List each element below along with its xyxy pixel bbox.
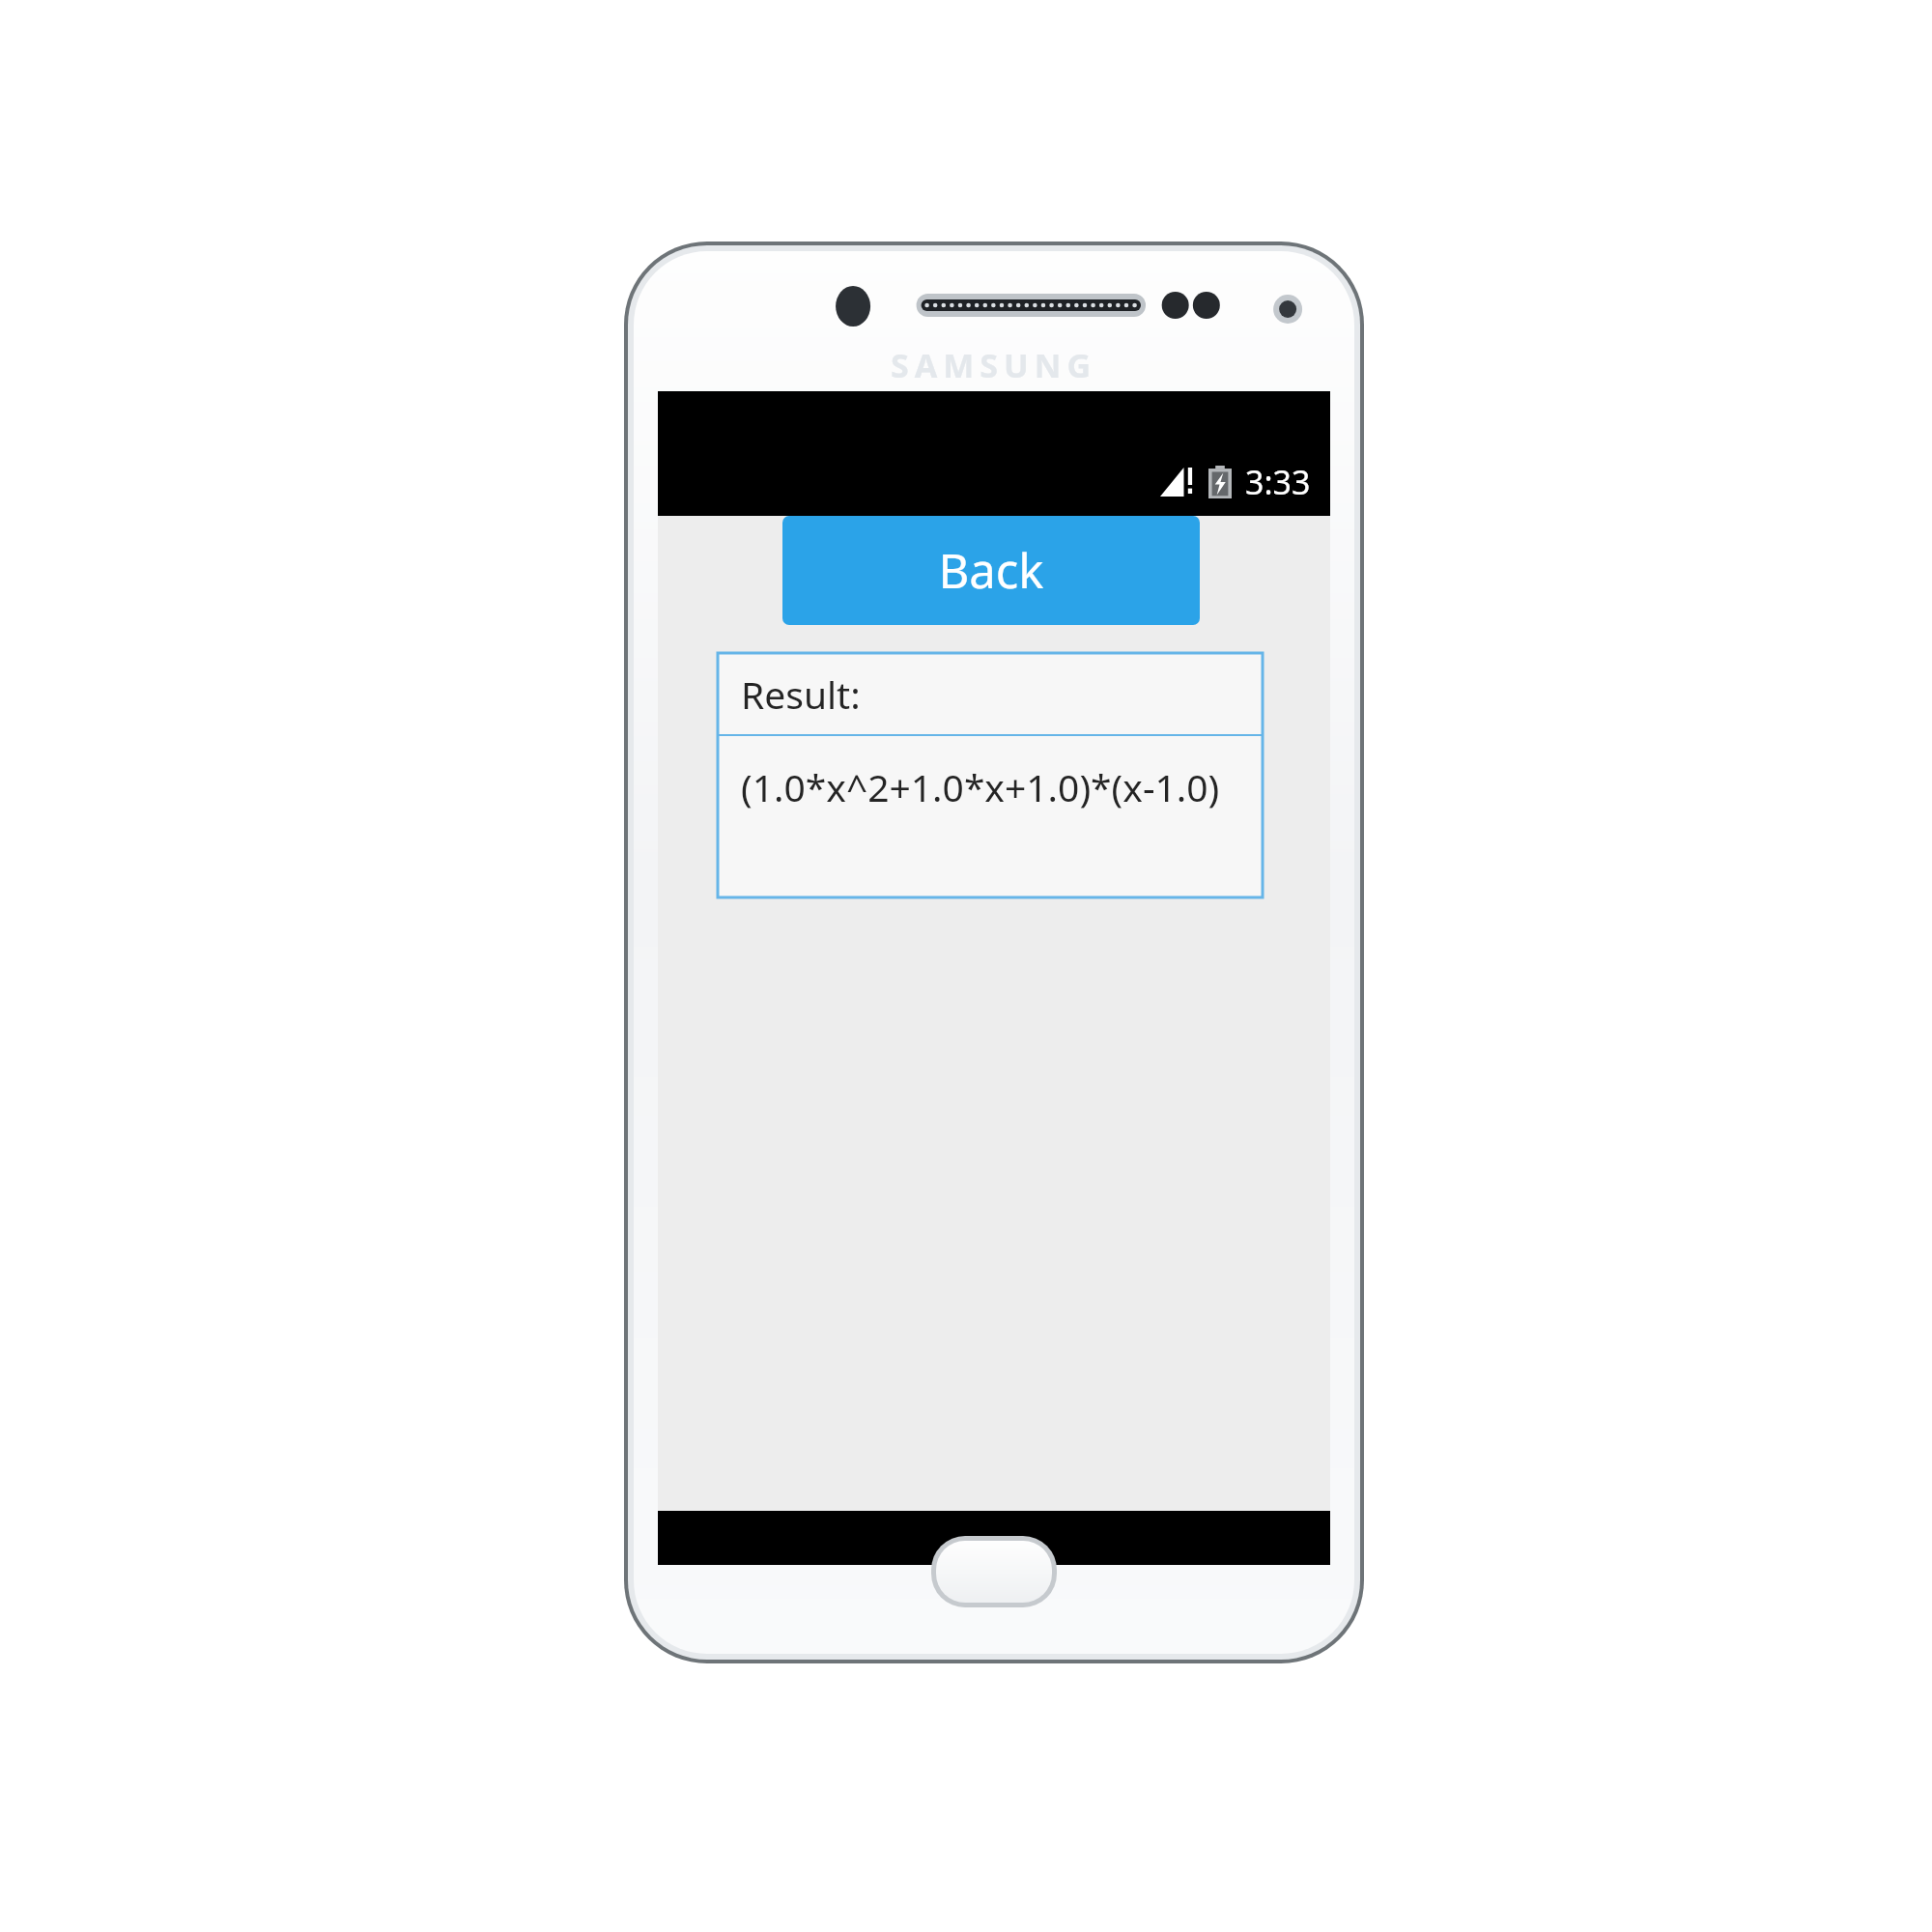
staticText: Result: — [741, 668, 861, 720]
staticText: SAMSUNG — [891, 343, 1097, 387]
staticText: (1.0*x^2+1.0*x+1.0)*(x-1.0) — [741, 761, 1220, 812]
button[interactable]: Back — [782, 516, 1200, 625]
staticText: Back — [938, 538, 1044, 603]
staticText: 3:33 — [1245, 460, 1311, 504]
